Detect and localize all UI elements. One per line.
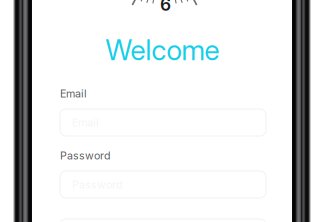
staticText: Email (72, 116, 99, 129)
staticText: Email (60, 87, 87, 100)
staticText: Password (72, 178, 123, 191)
staticText: Welcome (105, 33, 219, 67)
staticText: 6 (160, 0, 171, 15)
staticText: Password (60, 149, 111, 162)
